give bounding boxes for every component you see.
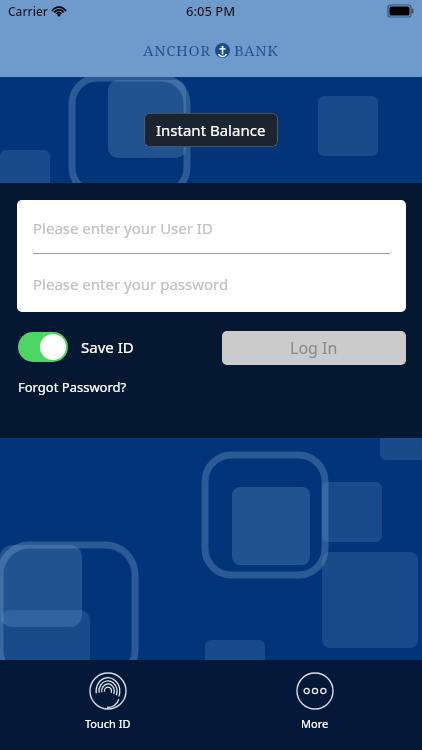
staticText: Save ID xyxy=(81,337,134,357)
staticText: More xyxy=(301,716,329,731)
button[interactable]: Please enter your password xyxy=(17,256,406,312)
staticText: 6:05 PM xyxy=(186,2,236,20)
staticText: BANK xyxy=(234,40,279,60)
staticText: Carrier xyxy=(8,3,48,19)
button[interactable]: Forgot Password? xyxy=(18,375,127,399)
button[interactable]: Please enter your User ID xyxy=(17,200,406,256)
button[interactable]: Instant Balance xyxy=(144,113,278,147)
staticText: Instant Balance xyxy=(156,120,266,140)
staticText: Touch ID xyxy=(85,716,131,731)
button[interactable]: Save ID xyxy=(18,331,134,363)
staticText: Log In xyxy=(290,337,338,359)
staticText: Forgot Password? xyxy=(18,378,127,396)
button[interactable]: Log In xyxy=(222,331,406,365)
button[interactable]: Touch ID xyxy=(72,672,144,731)
staticText: ANCHOR xyxy=(143,40,211,60)
button[interactable]: More xyxy=(279,672,351,731)
